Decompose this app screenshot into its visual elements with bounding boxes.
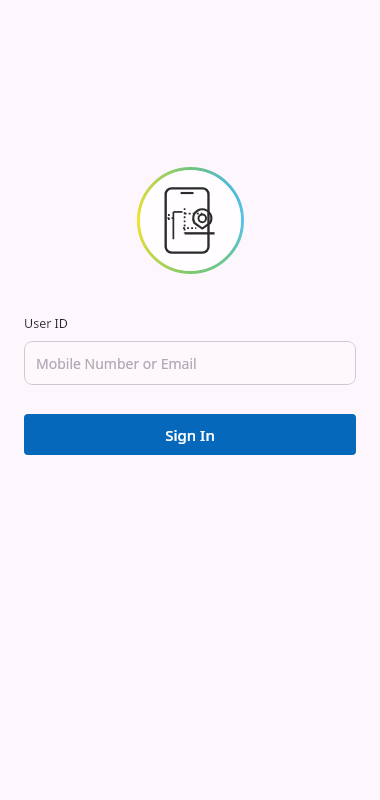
button[interactable]: Mobile Number or Email (24, 341, 356, 385)
button[interactable]: Sign In (24, 414, 356, 455)
staticText: User ID (24, 315, 68, 332)
other: App logo (137, 167, 244, 274)
staticText: Mobile Number or Email (36, 354, 197, 373)
staticText: Sign In (165, 425, 215, 445)
